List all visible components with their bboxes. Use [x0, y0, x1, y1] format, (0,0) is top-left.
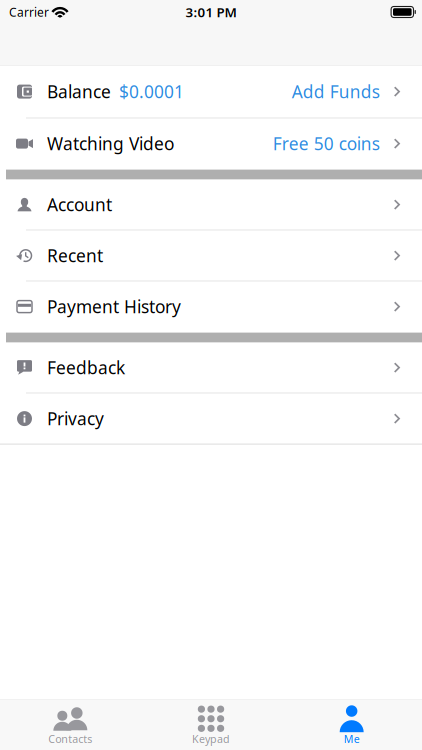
- staticText: Account: [47, 193, 112, 216]
- staticText: 3:01 PM: [185, 3, 236, 21]
- staticText: Balance: [47, 80, 111, 103]
- staticText: Add Funds: [292, 80, 380, 103]
- staticText: Contacts: [48, 732, 92, 746]
- button[interactable]: Feedback: [0, 343, 422, 393]
- button[interactable]: Balance: [0, 66, 422, 118]
- staticText: Carrier: [9, 4, 49, 20]
- staticText: Payment History: [47, 295, 181, 318]
- button[interactable]: Recent: [0, 231, 422, 281]
- button[interactable]: Watching Video: [0, 119, 422, 169]
- staticText: Free 50 coins: [273, 132, 380, 155]
- button[interactable]: Contacts: [0, 699, 141, 750]
- staticText: Watching Video: [47, 132, 174, 155]
- button[interactable]: Payment History: [0, 282, 422, 332]
- button[interactable]: Account: [0, 180, 422, 230]
- staticText: Keypad: [192, 732, 230, 746]
- staticText: Me: [344, 732, 360, 746]
- button[interactable]: Me: [281, 699, 422, 750]
- staticText: Feedback: [47, 356, 125, 379]
- staticText: $0.0001: [119, 80, 184, 103]
- button[interactable]: Keypad: [141, 699, 281, 750]
- staticText: Recent: [47, 244, 103, 267]
- staticText: Privacy: [47, 407, 104, 430]
- button[interactable]: Privacy: [0, 394, 422, 444]
